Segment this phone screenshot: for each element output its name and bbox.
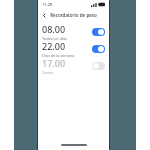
button[interactable]: Off <box>92 62 105 70</box>
staticText: Días de la semana <box>42 53 75 57</box>
staticText: Cerrar <box>42 70 54 74</box>
button[interactable]: 08.00 <box>38 23 109 40</box>
staticText: 17.00 <box>42 57 66 69</box>
button[interactable]: Back <box>40 11 49 20</box>
button[interactable]: 22.00 <box>38 40 109 57</box>
staticText: 22.00 <box>42 40 66 52</box>
staticText: 11:28 <box>42 2 53 7</box>
button[interactable]: On <box>92 28 105 36</box>
staticText: Todos los días <box>42 36 67 40</box>
staticText: 08.00 <box>42 23 66 35</box>
button[interactable]: 17.00 <box>38 57 109 74</box>
staticText: Recordatorio de peso <box>50 12 97 18</box>
button[interactable]: On <box>92 45 105 53</box>
